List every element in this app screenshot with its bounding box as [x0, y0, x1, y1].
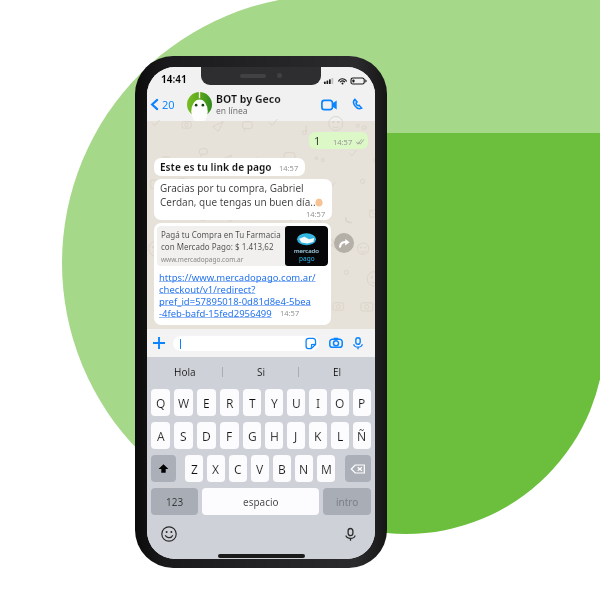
button[interactable]: W: [174, 389, 193, 416]
staticText: El: [333, 365, 342, 379]
staticText: www.mercadopago.com.ar: [161, 255, 244, 264]
button[interactable]: Pagá tu Compra en Tu Farmacia: [154, 223, 331, 325]
button[interactable]: I: [309, 389, 327, 416]
staticText: con Mercado Pago: $ 1.413,62: [161, 241, 274, 252]
staticText: O: [335, 395, 345, 411]
staticText: V: [256, 461, 264, 477]
staticText: H: [270, 428, 279, 444]
staticText: N: [299, 461, 309, 477]
staticText: Gracias por tu compra, Gabriel: [160, 181, 304, 195]
button[interactable]: L: [331, 422, 349, 449]
button[interactable]: Dictate: [343, 527, 358, 542]
staticText: P: [358, 395, 366, 411]
button[interactable]: Voice message: [353, 337, 363, 350]
staticText: X: [212, 461, 220, 477]
staticText: L: [337, 428, 344, 444]
button[interactable]: Forward: [334, 233, 354, 253]
staticText: 14:57: [279, 163, 299, 173]
staticText: G: [248, 428, 257, 444]
staticText: 123: [166, 495, 184, 509]
staticText: S: [180, 428, 187, 444]
button[interactable]: O: [331, 389, 349, 416]
button[interactable]: Z: [185, 455, 203, 482]
button[interactable]: Attach: [153, 337, 165, 349]
staticText: I: [316, 395, 321, 411]
button[interactable]: T: [243, 389, 261, 416]
button[interactable]: Si: [223, 357, 299, 386]
button[interactable]: [173, 336, 319, 351]
staticText: U: [292, 395, 301, 411]
button[interactable]: X: [207, 455, 225, 482]
button[interactable]: 1: [309, 132, 368, 149]
button[interactable]: U: [287, 389, 305, 416]
staticText: pago: [299, 254, 315, 263]
staticText: Este es tu link de pago: [160, 160, 272, 174]
staticText: espacio: [243, 495, 279, 509]
button[interactable]: 123: [151, 488, 198, 515]
button[interactable]: V: [251, 455, 269, 482]
staticText: Hola: [174, 365, 196, 379]
staticText: 20: [162, 97, 175, 112]
button[interactable]: R: [220, 389, 239, 416]
button[interactable]: Voice call: [351, 98, 364, 111]
staticText: R: [226, 395, 234, 411]
staticText: D: [202, 428, 211, 444]
button[interactable]: P: [353, 389, 371, 416]
staticText: 14:57: [280, 308, 300, 318]
staticText: 14:57: [333, 137, 353, 147]
staticText: Z: [191, 461, 198, 477]
button[interactable]: Ñ: [353, 422, 371, 449]
staticText: Si: [257, 365, 266, 379]
button[interactable]: S: [174, 422, 193, 449]
button[interactable]: A: [151, 422, 170, 449]
staticText: BOT by Geco: [216, 92, 281, 106]
staticText: Pagá tu Compra en Tu Farmacia: [161, 229, 281, 240]
button[interactable]: D: [197, 422, 216, 449]
button[interactable]: K: [309, 422, 327, 449]
button[interactable]: B: [273, 455, 291, 482]
button[interactable]: Video call: [321, 99, 337, 111]
staticText: Y: [271, 395, 278, 411]
button[interactable]: C: [229, 455, 247, 482]
button[interactable]: H: [265, 422, 283, 449]
staticText: M: [321, 461, 332, 477]
button[interactable]: Q: [151, 389, 170, 416]
staticText: 14:57: [306, 209, 326, 219]
button[interactable]: E: [197, 389, 216, 416]
staticText: J: [294, 428, 298, 444]
staticText: T: [249, 395, 256, 411]
staticText: 1: [314, 133, 321, 148]
staticText: -4feb-bafd-15fed2956499: [159, 307, 272, 319]
button[interactable]: espacio: [202, 488, 319, 515]
staticText: 14:41: [161, 72, 187, 86]
staticText: K: [314, 428, 322, 444]
staticText: mercado: [294, 247, 319, 255]
staticText: A: [157, 428, 165, 444]
staticText: W: [178, 395, 190, 411]
staticText: https://www.mercadopago.com.ar/: [159, 271, 316, 283]
staticText: F: [226, 428, 233, 444]
button[interactable]: Este es tu link de pago: [154, 158, 305, 176]
button[interactable]: Emoji: [161, 526, 177, 542]
button[interactable]: M: [317, 455, 335, 482]
button[interactable]: Y: [265, 389, 283, 416]
button[interactable]: F: [220, 422, 239, 449]
staticText: C: [234, 461, 242, 477]
staticText: Cerdan, que tengas un buen día..: [160, 195, 316, 209]
button[interactable]: J: [287, 422, 305, 449]
button[interactable]: El: [299, 357, 375, 386]
button[interactable]: Hola: [147, 357, 223, 386]
button[interactable]: intro: [323, 488, 371, 515]
button[interactable]: Camera: [329, 337, 343, 349]
button[interactable]: G: [243, 422, 261, 449]
button[interactable]: Shift: [151, 455, 176, 482]
staticText: Ñ: [357, 428, 367, 444]
button[interactable]: Gracias por tu compra, Gabriel: [154, 179, 332, 220]
button[interactable]: N: [295, 455, 313, 482]
button[interactable]: 20: [147, 88, 375, 121]
button[interactable]: Backspace: [345, 455, 371, 482]
staticText: B: [278, 461, 286, 477]
staticText: Q: [156, 395, 166, 411]
staticText: checkout/v1/redirect?: [159, 283, 256, 295]
staticText: intro: [336, 495, 359, 509]
